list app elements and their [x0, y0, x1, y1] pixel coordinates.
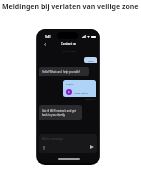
staticText: Got it! We'll review it and get back to …	[42, 109, 79, 117]
staticText: 10 JUN 2025	[62, 49, 76, 52]
button[interactable]: Hello	[84, 57, 97, 63]
staticText: Contact us	[61, 42, 76, 46]
button[interactable]: Hello! What can I help you with?	[39, 67, 89, 76]
staticText: Hello	[88, 59, 94, 62]
button[interactable]: Voice message	[41, 145, 46, 150]
staticText: Video player	[74, 91, 88, 94]
staticText: Meldingen bij verlaten van veilige zone	[2, 2, 139, 12]
button[interactable]: Send	[89, 144, 95, 150]
staticText: Write a message	[42, 137, 63, 141]
staticText: Hello! What can I help you with?	[42, 70, 81, 73]
staticText: Delivered	[85, 98, 96, 101]
button[interactable]: Got it! We'll review it and get back to …	[39, 105, 82, 120]
button[interactable]: Back	[42, 41, 48, 47]
button[interactable]: Write a message	[39, 134, 97, 153]
button[interactable]: a.mp4	[63, 80, 96, 97]
staticText: 9:41	[45, 35, 51, 39]
staticText: a.mp4	[66, 82, 74, 85]
